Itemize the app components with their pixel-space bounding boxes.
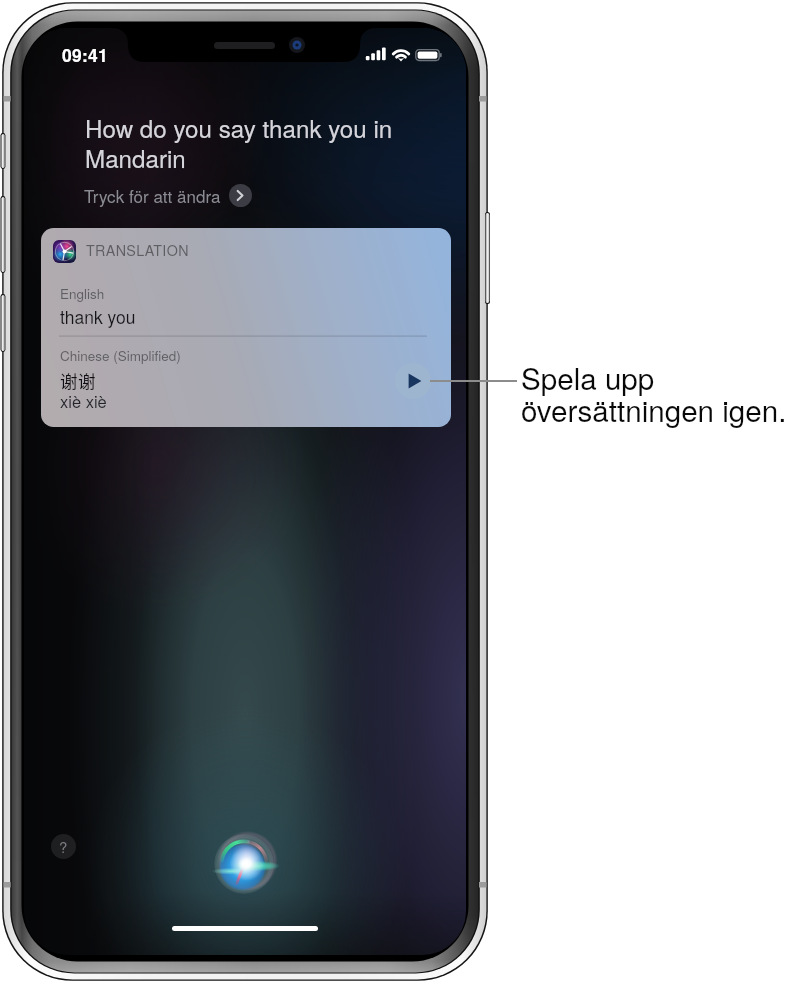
staticText: Tryck för att ändra: [84, 183, 221, 207]
button[interactable]: Siri: [212, 832, 276, 896]
button[interactable]: Hjälp: [51, 834, 76, 859]
staticText: ?: [59, 836, 68, 857]
button[interactable]: Spela upp översättningen igen: [395, 363, 431, 399]
staticText: Spela upp översättningen igen.: [521, 356, 787, 430]
button[interactable]: Tryck för att ändra: [84, 183, 252, 207]
staticText: thank you: [60, 304, 136, 329]
staticText: xiè xiè: [60, 389, 107, 413]
button[interactable]: How do you say thank you in Mandarin: [85, 110, 393, 175]
staticText: Chinese (Simplified): [60, 346, 181, 365]
staticText: TRANSLATION: [86, 240, 189, 260]
staticText: English: [60, 284, 105, 303]
button[interactable]: TRANSLATION: [41, 228, 451, 427]
